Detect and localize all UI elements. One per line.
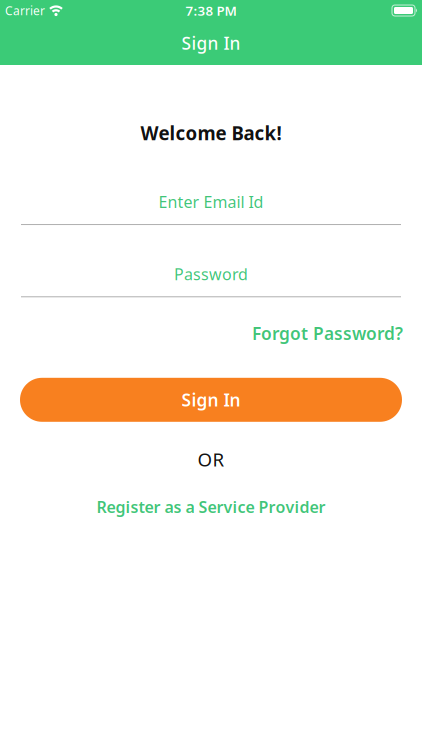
staticText: Enter Email Id — [158, 191, 263, 212]
button[interactable]: Forgot Password? — [252, 322, 403, 345]
staticText: Sign In — [181, 388, 240, 411]
button[interactable]: Register as a Service Provider — [96, 496, 325, 517]
staticText: Forgot Password? — [252, 322, 403, 345]
staticText: Welcome Back! — [140, 120, 281, 145]
button[interactable]: Enter Email Id — [21, 191, 401, 225]
staticText: Sign In — [181, 31, 240, 54]
staticText: Register as a Service Provider — [96, 496, 325, 517]
staticText: 7:38 PM — [185, 2, 236, 19]
staticText: OR — [197, 447, 224, 472]
button[interactable]: Password — [21, 263, 401, 297]
staticText: Carrier — [5, 2, 45, 18]
button[interactable]: Sign In — [20, 378, 402, 422]
staticText: Password — [174, 263, 248, 285]
